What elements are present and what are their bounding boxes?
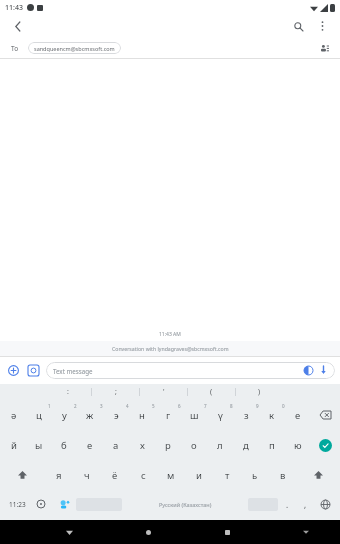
button[interactable]: Home	[137, 521, 159, 543]
button[interactable]: 11:23	[4, 490, 30, 518]
button[interactable]: ё	[101, 460, 129, 490]
staticText: :	[67, 387, 69, 397]
button[interactable]: Русский (Казахстан)	[76, 498, 278, 511]
button[interactable]: Shift	[1, 460, 44, 490]
staticText: е	[295, 409, 301, 422]
button[interactable]: sandqueencm@sbcmxsoft.com	[28, 42, 121, 54]
staticText: в	[280, 469, 286, 482]
button[interactable]: ц	[26, 400, 51, 430]
button[interactable]: ь	[241, 460, 269, 490]
button[interactable]: б	[51, 430, 77, 460]
staticText: 2	[74, 403, 77, 409]
staticText: ы	[35, 439, 43, 452]
button[interactable]: Back	[9, 17, 27, 35]
staticText: а	[113, 439, 119, 452]
button[interactable]: м	[157, 460, 185, 490]
button[interactable]: Recents	[216, 521, 238, 543]
staticText: н	[139, 409, 145, 422]
button[interactable]: н	[129, 400, 155, 430]
staticText: г	[166, 409, 171, 422]
button[interactable]: о	[181, 430, 207, 460]
button[interactable]: я	[44, 460, 73, 490]
button[interactable]: и	[185, 460, 213, 490]
staticText: 5	[152, 403, 155, 409]
button[interactable]: у	[51, 400, 77, 430]
button[interactable]: Settings	[30, 490, 52, 518]
button[interactable]: Camera	[25, 362, 42, 379]
button[interactable]: (	[188, 384, 235, 400]
staticText: (	[210, 387, 213, 397]
button[interactable]: й	[1, 430, 26, 460]
button[interactable]: To	[8, 41, 22, 55]
button[interactable]: ж	[77, 400, 103, 430]
staticText: ж	[86, 409, 94, 422]
staticText: б	[61, 439, 67, 452]
button[interactable]: Backspace	[311, 400, 339, 430]
button[interactable]: ч	[73, 460, 101, 490]
button[interactable]: е	[77, 430, 103, 460]
staticText: 1	[48, 403, 51, 409]
button[interactable]: е	[285, 400, 311, 430]
button[interactable]: ә	[1, 400, 26, 430]
button[interactable]: :	[44, 384, 91, 400]
button[interactable]: Enter	[311, 430, 339, 460]
button[interactable]: ү	[207, 400, 233, 430]
staticText: 3	[100, 403, 103, 409]
staticText: 6	[178, 403, 181, 409]
staticText: у	[62, 409, 67, 422]
button[interactable]: в	[269, 460, 297, 490]
button[interactable]: Emoji	[52, 490, 76, 518]
button[interactable]: Back	[58, 521, 80, 543]
staticText: о	[191, 439, 197, 452]
button[interactable]: Text message	[46, 362, 335, 379]
staticText: ю	[294, 439, 302, 452]
staticText: Text message	[53, 367, 93, 375]
button[interactable]: ы	[26, 430, 51, 460]
staticText: ё	[112, 469, 118, 482]
staticText: 11:43	[5, 3, 23, 13]
button[interactable]: с	[129, 460, 157, 490]
button[interactable]: ш	[181, 400, 207, 430]
button[interactable]: Shift right	[297, 460, 339, 490]
button[interactable]: More options	[313, 17, 331, 35]
button[interactable]: р	[155, 430, 181, 460]
staticText: ш	[190, 409, 199, 422]
button[interactable]: Add attachment	[5, 362, 22, 379]
button[interactable]: Hide keyboard	[295, 521, 317, 543]
staticText: с	[141, 469, 146, 482]
staticText: 11:23	[9, 500, 26, 509]
button[interactable]: ю	[285, 430, 311, 460]
staticText: ц	[36, 409, 42, 422]
button[interactable]: х	[129, 430, 155, 460]
button[interactable]: Voice input	[314, 490, 336, 518]
button[interactable]: Search	[289, 17, 307, 35]
staticText: 7	[204, 403, 207, 409]
button[interactable]: а	[103, 430, 129, 460]
staticText: To	[11, 44, 19, 53]
button[interactable]: '	[140, 384, 187, 400]
button[interactable]: э	[103, 400, 129, 430]
staticText: ч	[84, 469, 90, 482]
button[interactable]: Voice message	[319, 366, 328, 375]
staticText: .	[286, 499, 289, 510]
staticText: ә	[11, 409, 17, 422]
button[interactable]: т	[213, 460, 241, 490]
button[interactable]: л	[207, 430, 233, 460]
button[interactable]: ,	[296, 490, 314, 518]
button[interactable]: Sticker	[304, 366, 313, 375]
button[interactable]: к	[259, 400, 285, 430]
staticText: 9	[256, 403, 259, 409]
staticText: 11:43 AM	[159, 331, 181, 338]
button[interactable]: д	[233, 430, 259, 460]
staticText: Русский (Казахстан)	[159, 501, 212, 508]
button[interactable]: г	[155, 400, 181, 430]
button[interactable]: .	[278, 490, 296, 518]
staticText: л	[217, 439, 223, 452]
button[interactable]: ;	[92, 384, 139, 400]
staticText: )	[258, 387, 261, 397]
button[interactable]: Contacts	[318, 41, 332, 55]
button[interactable]: )	[236, 384, 283, 400]
button[interactable]: п	[259, 430, 285, 460]
staticText: ;	[115, 387, 117, 397]
button[interactable]: з	[233, 400, 259, 430]
